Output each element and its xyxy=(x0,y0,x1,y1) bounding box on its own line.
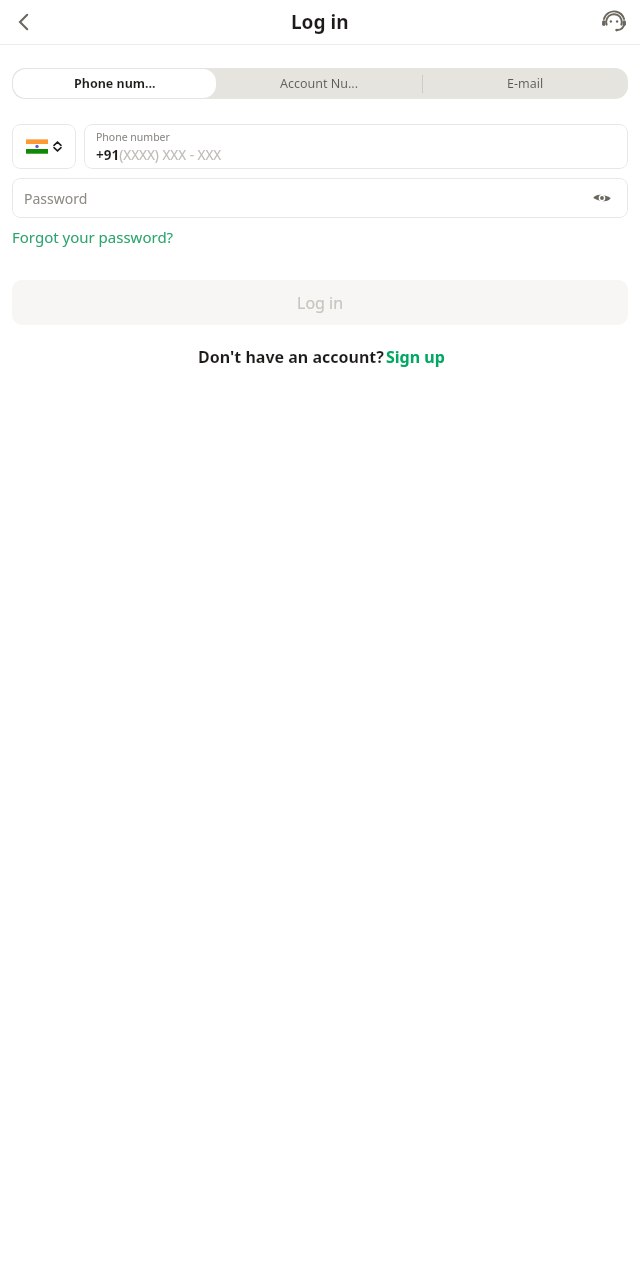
staticText: Phone number xyxy=(96,130,170,144)
button[interactable]: Forgot your password? xyxy=(12,227,174,247)
button[interactable]: Customer support xyxy=(594,2,634,42)
button[interactable]: Back xyxy=(4,2,44,42)
staticText: Sign up xyxy=(386,346,445,368)
staticText: Log in xyxy=(297,292,344,314)
button[interactable]: Account Nu... xyxy=(217,68,422,99)
button[interactable]: Phone num... xyxy=(13,69,216,98)
staticText: Don't have an account? xyxy=(196,346,386,368)
button[interactable]: Password xyxy=(12,178,628,218)
staticText: +91(XXXX) XXX - XXX xyxy=(96,146,222,164)
staticText: E-mail xyxy=(507,75,544,92)
button[interactable]: Select country code xyxy=(12,124,76,169)
staticText: Password xyxy=(24,189,588,208)
staticText: Log in xyxy=(291,9,349,35)
staticText: Forgot your password? xyxy=(12,227,174,247)
button[interactable]: Sign up xyxy=(386,346,445,368)
button[interactable]: E-mail xyxy=(423,68,628,99)
button[interactable]: Phone number xyxy=(84,124,628,169)
button[interactable]: Show password xyxy=(588,184,616,212)
button[interactable]: Log in xyxy=(12,280,628,325)
staticText: Phone num... xyxy=(74,75,156,92)
staticText: Account Nu... xyxy=(280,75,359,92)
